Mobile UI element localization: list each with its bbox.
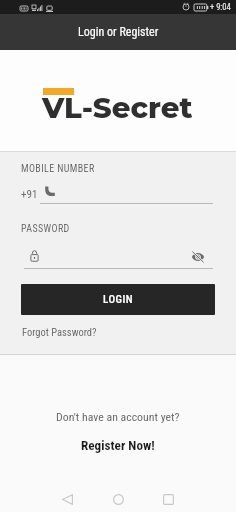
staticText: Login or Register <box>78 25 159 39</box>
button[interactable]: Recents <box>149 480 187 512</box>
staticText: MOBILE NUMBER <box>21 163 95 175</box>
button[interactable]: Register Now! <box>81 438 155 453</box>
staticText: Register Now! <box>81 438 155 453</box>
staticText: Forgot Password? <box>22 326 97 338</box>
button[interactable]: LOGIN <box>21 284 215 315</box>
button[interactable]: Home <box>99 480 137 512</box>
button[interactable]: Back <box>48 480 86 512</box>
button[interactable]: Show password <box>191 251 205 263</box>
staticText: +91 <box>21 188 38 201</box>
staticText: PASSWORD <box>21 223 70 235</box>
staticText: LOGIN <box>103 293 134 306</box>
staticText: + 9:04 <box>210 2 231 12</box>
button[interactable]: Login or Register <box>0 14 236 50</box>
staticText: VL-Secret <box>42 90 193 126</box>
button[interactable]: Forgot Password? <box>22 326 97 338</box>
staticText: Don't have an account yet? <box>56 410 180 424</box>
